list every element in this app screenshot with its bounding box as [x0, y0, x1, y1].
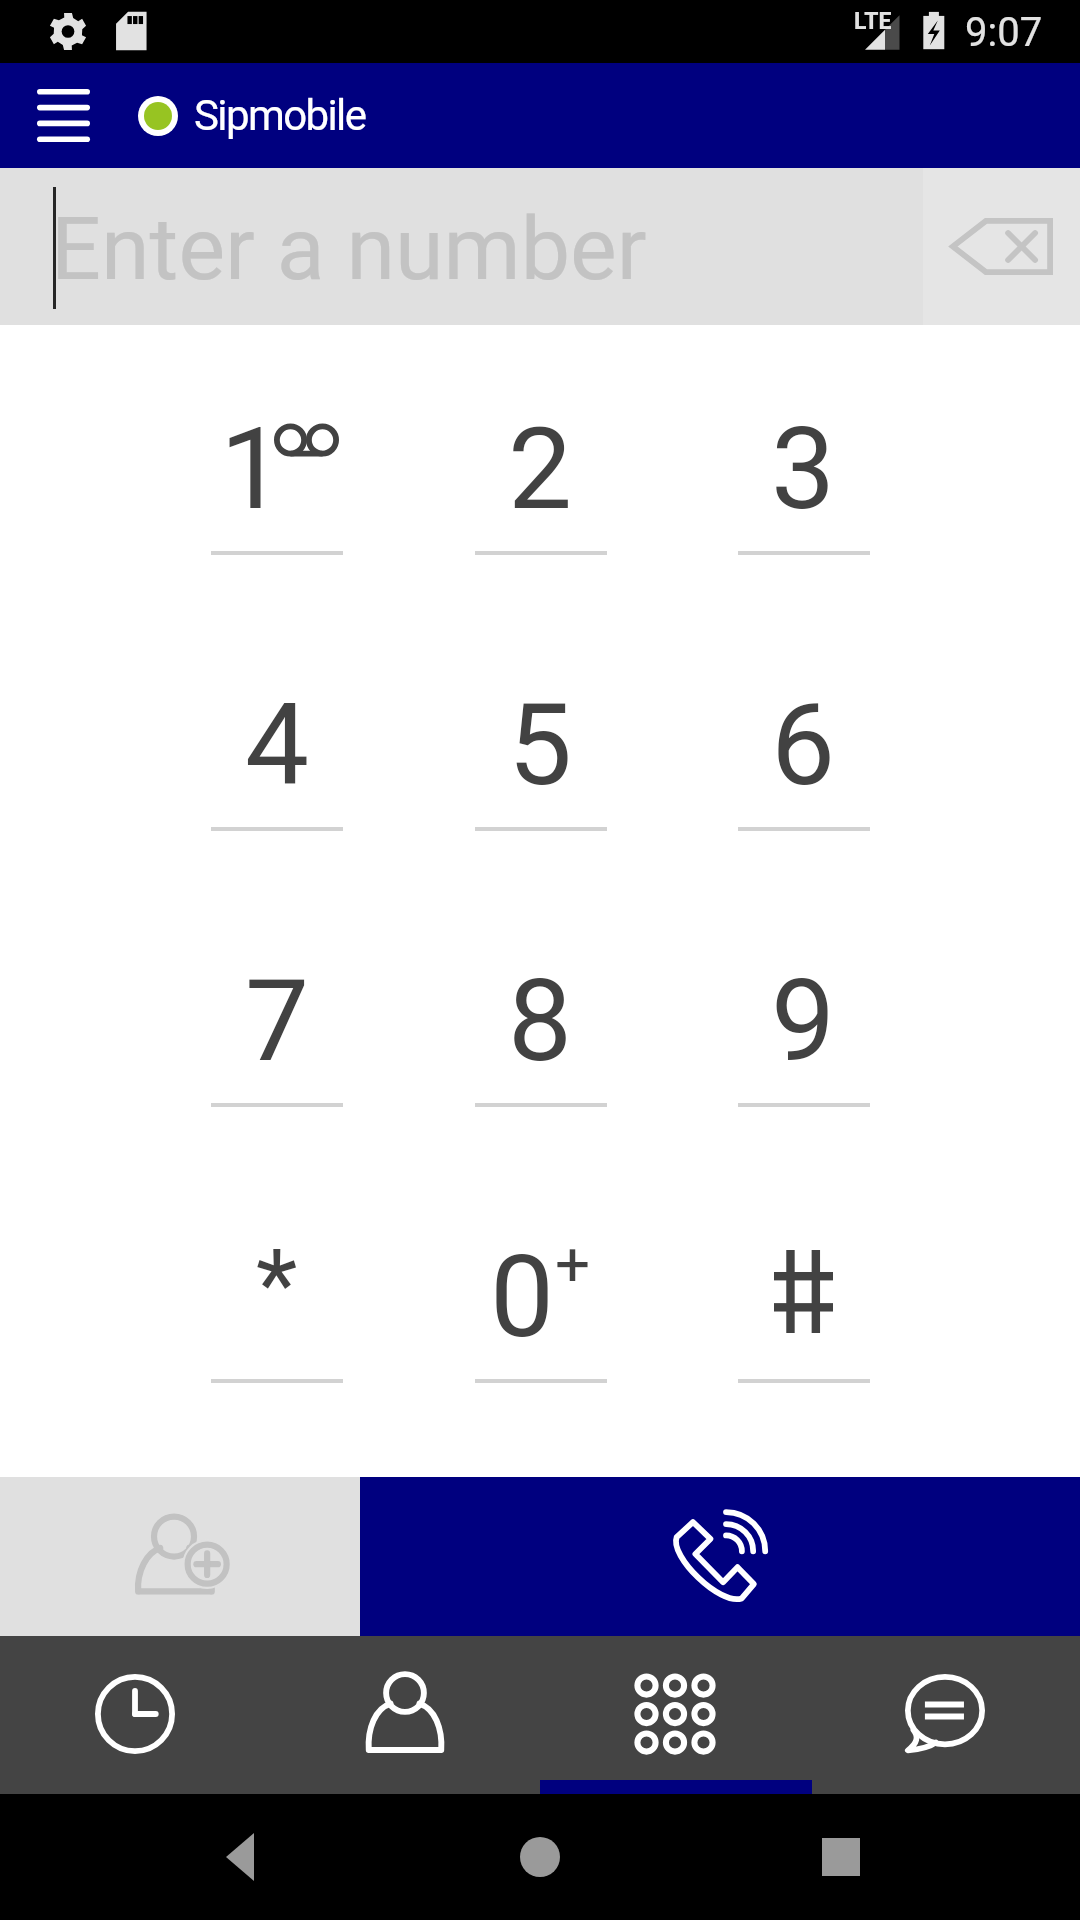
- staticText: 8: [508, 954, 573, 1088]
- button[interactable]: Dialpad: [540, 1636, 810, 1794]
- button[interactable]: 9: [672, 877, 935, 1153]
- staticText: 7: [245, 954, 310, 1088]
- button[interactable]: Contacts: [270, 1636, 540, 1794]
- button[interactable]: #: [672, 1153, 935, 1429]
- staticText: 9: [771, 954, 836, 1088]
- staticText: +: [555, 1227, 591, 1300]
- button[interactable]: 4: [145, 601, 409, 877]
- button[interactable]: Recent calls: [0, 1636, 270, 1794]
- staticText: 6: [771, 678, 836, 812]
- staticText: 0: [490, 1230, 555, 1364]
- button[interactable]: 8: [409, 877, 672, 1153]
- staticText: Enter a number: [51, 197, 647, 300]
- button[interactable]: Messages: [810, 1636, 1080, 1794]
- button[interactable]: 3: [672, 325, 935, 601]
- staticText: 1: [220, 402, 285, 536]
- button[interactable]: 6: [672, 601, 935, 877]
- button[interactable]: *: [145, 1153, 409, 1429]
- staticText: 4: [245, 678, 310, 812]
- button[interactable]: 5: [409, 601, 672, 877]
- staticText: 3: [771, 402, 836, 536]
- button[interactable]: Open navigation drawer: [0, 63, 126, 168]
- button[interactable]: Add to contacts: [0, 1477, 360, 1636]
- button[interactable]: Backspace: [923, 168, 1080, 325]
- staticText: 2: [508, 402, 573, 536]
- button[interactable]: 2: [409, 325, 672, 601]
- staticText: 5: [508, 678, 573, 812]
- button[interactable]: Enter a number: [0, 168, 1080, 325]
- button[interactable]: 7: [145, 877, 409, 1153]
- button[interactable]: 1: [145, 325, 409, 601]
- staticText: Sipmobile: [194, 91, 366, 140]
- button[interactable]: Call: [360, 1477, 1080, 1636]
- staticText: LTE: [854, 8, 892, 35]
- staticText: *: [256, 1229, 298, 1342]
- button[interactable]: 0: [409, 1153, 672, 1429]
- staticText: 9:07: [965, 9, 1043, 56]
